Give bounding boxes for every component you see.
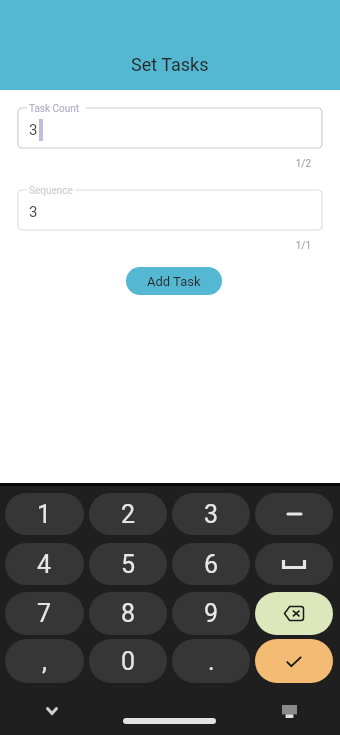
button[interactable]: Space xyxy=(255,543,333,585)
staticText: 3 xyxy=(29,203,38,221)
staticText: Add Task xyxy=(147,274,201,289)
staticText: , xyxy=(42,647,47,676)
staticText: Set Tasks xyxy=(131,54,209,75)
button[interactable]: 5 xyxy=(89,543,167,585)
staticText: Task Count xyxy=(29,103,80,115)
staticText: Sequence xyxy=(29,185,73,197)
staticText: 5 xyxy=(121,550,136,579)
button[interactable]: 9 xyxy=(172,592,250,635)
staticText: 9 xyxy=(204,599,219,628)
button[interactable]: Minus xyxy=(255,493,333,535)
staticText: 0 xyxy=(121,647,136,676)
staticText: 3 xyxy=(204,500,219,529)
button[interactable]: Enter xyxy=(255,639,333,683)
button[interactable]: 8 xyxy=(89,592,167,635)
button[interactable]: . xyxy=(172,639,250,683)
staticText: 8 xyxy=(121,599,136,628)
staticText: 1 xyxy=(37,500,52,529)
button[interactable]: 2 xyxy=(89,493,167,535)
staticText: 4 xyxy=(37,550,52,579)
button[interactable]: 7 xyxy=(5,592,84,635)
button[interactable]: 1 xyxy=(5,493,84,535)
staticText: 1/2 xyxy=(295,158,311,170)
button[interactable]: Hide keyboard xyxy=(38,697,66,725)
button[interactable]: Switch keyboard xyxy=(275,697,303,725)
button[interactable]: 4 xyxy=(5,543,84,585)
button[interactable]: Backspace xyxy=(255,592,333,635)
button[interactable]: 3 xyxy=(172,493,250,535)
staticText: 2 xyxy=(121,500,136,529)
button[interactable]: Add Task xyxy=(126,267,222,295)
button[interactable]: , xyxy=(5,639,84,683)
staticText: . xyxy=(208,647,215,676)
button[interactable]: 0 xyxy=(89,639,167,683)
staticText: 3 xyxy=(29,121,38,139)
staticText: 6 xyxy=(204,550,219,579)
button[interactable]: 6 xyxy=(172,543,250,585)
staticText: 7 xyxy=(37,599,52,628)
staticText: 1/1 xyxy=(295,240,311,252)
